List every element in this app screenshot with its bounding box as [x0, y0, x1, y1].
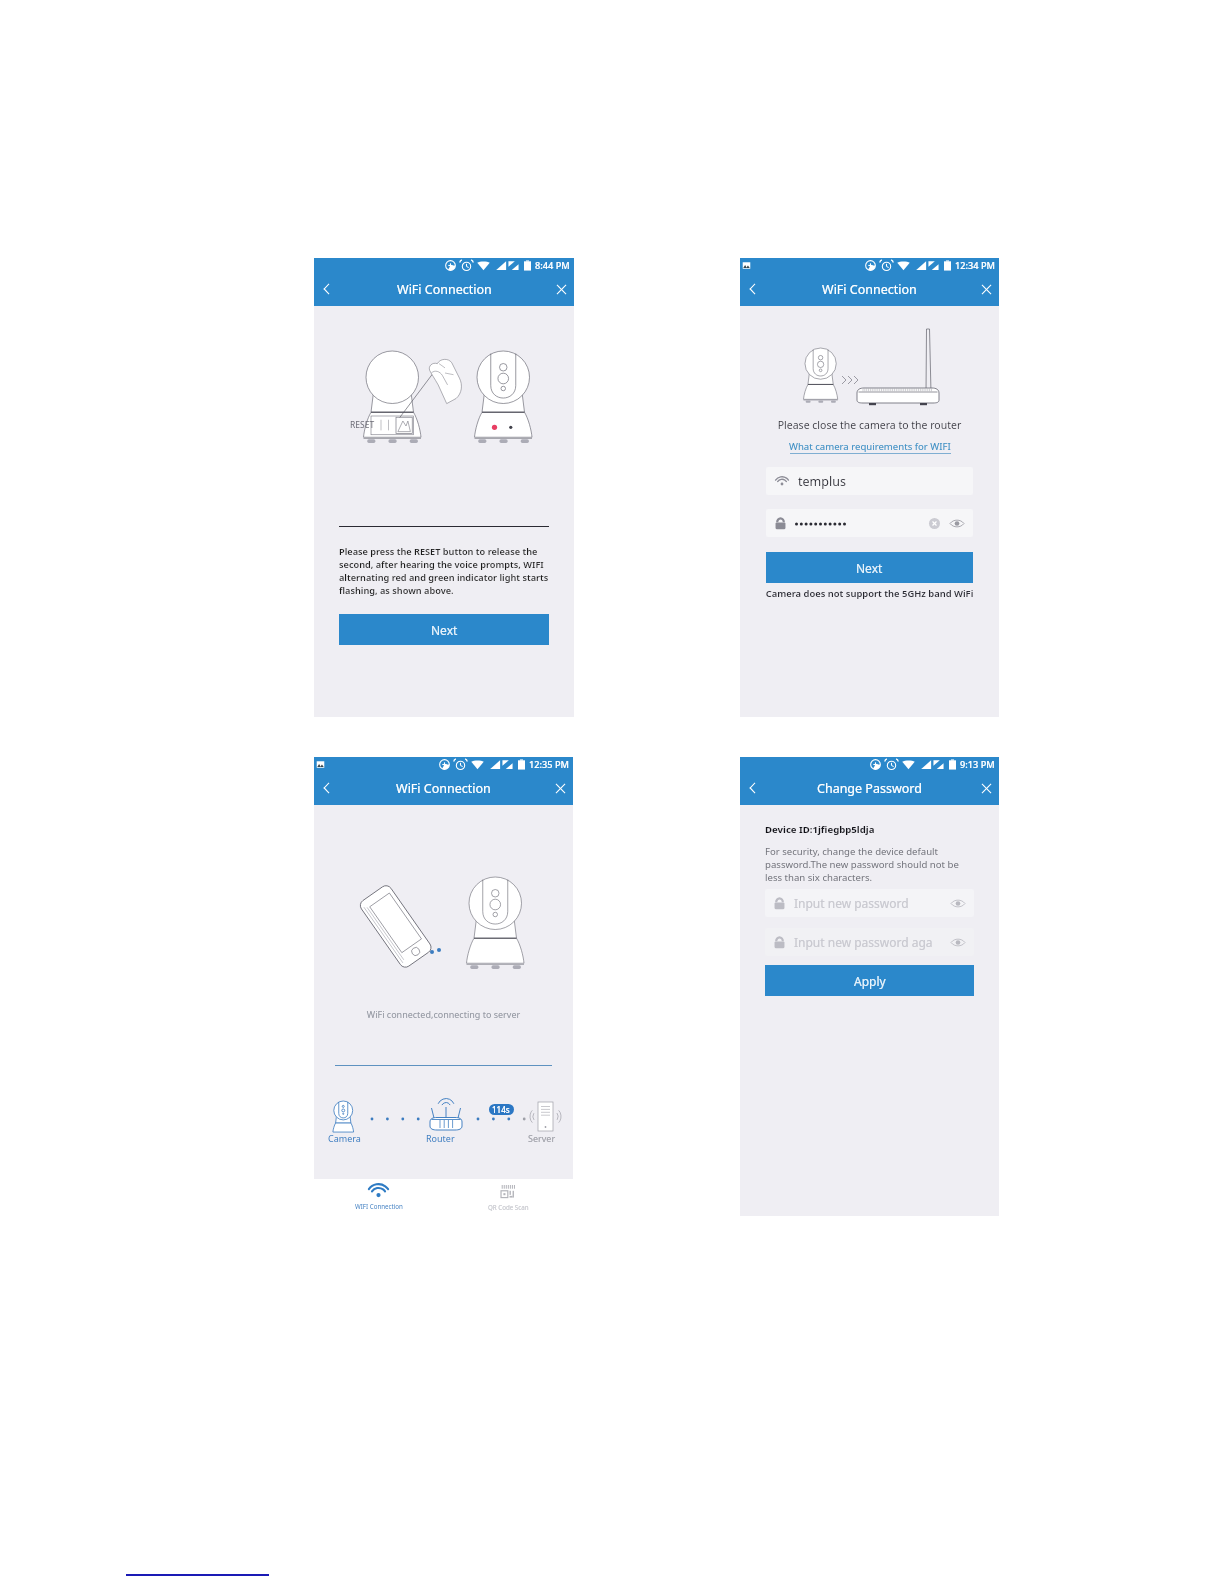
- button[interactable]: Clear password: [929, 518, 940, 529]
- staticText: 114s: [492, 1104, 510, 1115]
- button[interactable]: Back: [314, 272, 340, 306]
- staticText: WIFI Connection: [355, 1202, 403, 1210]
- button[interactable]: Close: [973, 272, 999, 306]
- staticText: WiFi connected,connecting to server: [314, 1008, 573, 1020]
- staticText: 9:13 PM: [960, 758, 995, 771]
- button[interactable]: Close: [547, 771, 573, 805]
- button[interactable]: Close: [973, 771, 999, 805]
- staticText: WiFi Connection: [822, 281, 917, 298]
- button[interactable]: Back: [740, 272, 766, 306]
- button[interactable]: QR Code Scan: [443, 1179, 573, 1216]
- staticText: Server: [528, 1132, 556, 1144]
- staticText: For security, change the device default …: [765, 845, 974, 884]
- button[interactable]: What camera requirements for WIFI: [789, 440, 951, 454]
- staticText: Change Password: [817, 780, 922, 797]
- button[interactable]: Next: [339, 614, 549, 645]
- staticText: What camera requirements for WIFI: [789, 440, 951, 453]
- staticText: templus: [798, 473, 846, 490]
- staticText: 12:34 PM: [955, 259, 995, 272]
- button[interactable]: Back: [740, 771, 766, 805]
- staticText: 12:35 PM: [529, 758, 569, 771]
- button[interactable]: Clear password: [766, 509, 973, 537]
- button[interactable]: Next: [766, 552, 973, 583]
- button[interactable]: Show password again: [951, 938, 965, 947]
- button[interactable]: WIFI Connection: [314, 1179, 443, 1216]
- staticText: Camera does not support the 5GHz band Wi…: [740, 587, 999, 600]
- button[interactable]: Show password: [951, 899, 965, 908]
- staticText: Please press the RESET button to release…: [339, 545, 549, 597]
- button[interactable]: Show password: [950, 519, 964, 528]
- button[interactable]: Input new password aga: [765, 928, 974, 956]
- staticText: Router: [426, 1132, 455, 1144]
- button[interactable]: Input new password: [765, 889, 974, 917]
- staticText: Input new password aga: [794, 934, 951, 950]
- staticText: Please close the camera to the router: [740, 418, 999, 432]
- button[interactable]: Apply: [765, 965, 974, 996]
- staticText: 8:44 PM: [535, 259, 570, 272]
- button[interactable]: Back: [314, 771, 340, 805]
- staticText: RESET: [350, 419, 375, 431]
- staticText: Input new password: [794, 895, 951, 911]
- staticText: Next: [856, 560, 883, 576]
- button[interactable]: Close: [548, 272, 574, 306]
- staticText: Camera: [328, 1132, 361, 1144]
- button[interactable]: templus: [766, 467, 973, 495]
- staticText: WiFi Connection: [396, 780, 491, 797]
- staticText: WiFi Connection: [397, 281, 492, 298]
- staticText: Apply: [854, 973, 886, 989]
- staticText: Device ID:1jfiegbp5ldja: [765, 823, 875, 836]
- staticText: QR Code Scan: [488, 1203, 529, 1211]
- staticText: Next: [431, 622, 458, 638]
